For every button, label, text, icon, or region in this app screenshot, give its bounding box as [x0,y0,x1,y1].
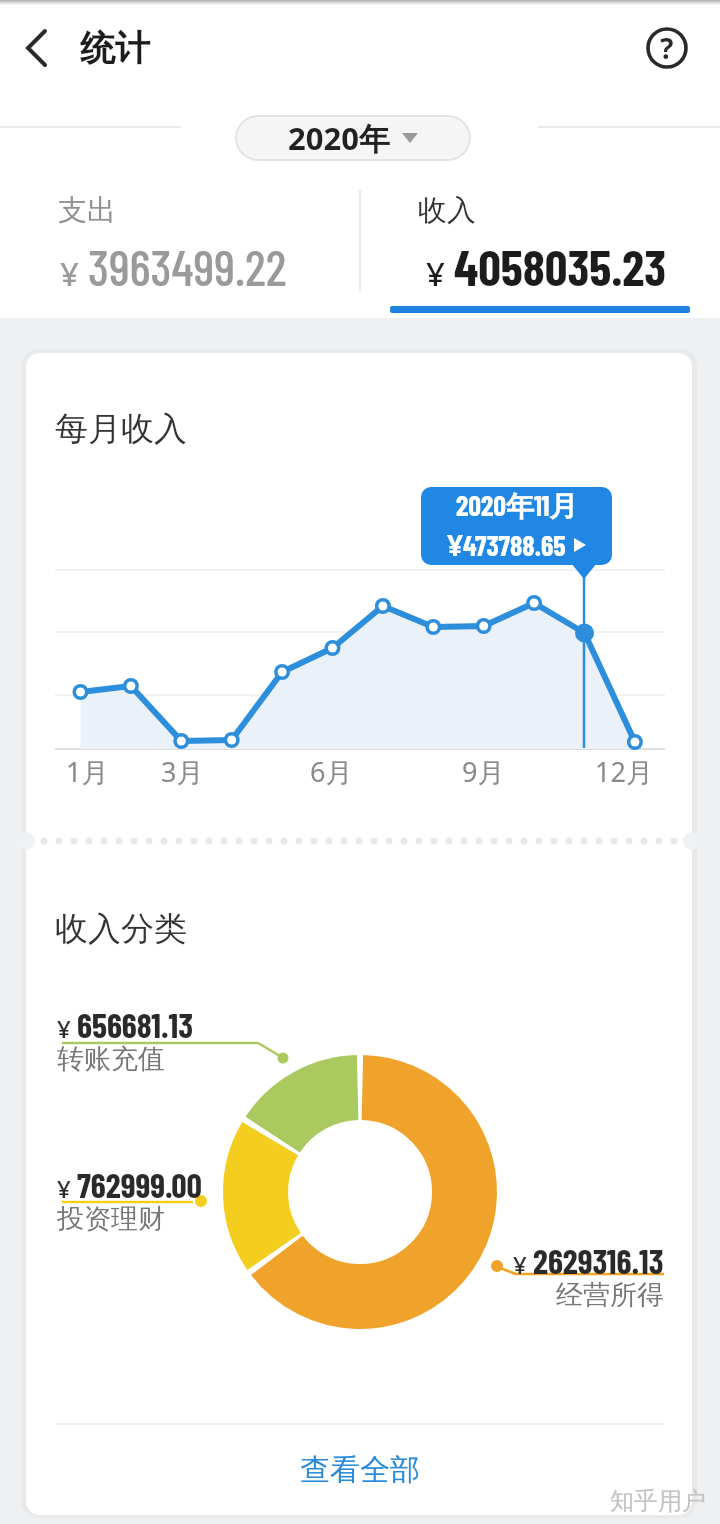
button[interactable]: 查看全部 [260,1446,460,1494]
staticText: ¥ [60,251,88,296]
staticText: ? [660,29,674,67]
staticText: 3963499.22 [88,236,287,296]
staticText: 转账充值 [57,1042,165,1076]
staticText: 2020年 [288,117,390,159]
staticText: 12月 [595,753,653,790]
staticText: 投资理财 [57,1202,165,1236]
staticText: 收入分类 [55,908,187,950]
staticText: ¥ [513,1248,533,1281]
staticText: 6月 [310,753,353,790]
staticText: 查看全部 [300,1451,420,1489]
staticText: 9月 [462,753,505,790]
staticText: 收入 [418,192,476,229]
staticText: 每月收入 [55,408,187,450]
staticText: ¥473788.65 [447,526,566,564]
button[interactable]: ? [644,25,690,71]
staticText: 656681.13 [77,1004,194,1045]
staticText: 1月 [66,753,109,790]
staticText: 经营所得 [556,1278,664,1312]
button[interactable]: 支出 [0,180,360,310]
button[interactable]: 2020年 [235,115,471,161]
staticText: 762999.00 [77,1164,202,1205]
staticText: ¥ [57,1172,77,1205]
button[interactable]: 收入 [360,180,720,310]
staticText: ¥ [57,1012,77,1045]
staticText: 2629316.13 [533,1240,664,1281]
button[interactable] [14,24,62,72]
staticText: 4058035.23 [454,236,667,296]
staticText: 知乎用户 [610,1486,706,1516]
staticText: 2020年11月 [456,488,578,524]
staticText: ¥ [426,251,454,296]
staticText: 3月 [161,753,204,790]
staticText: 统计 [80,26,150,70]
staticText: 支出 [58,192,116,229]
